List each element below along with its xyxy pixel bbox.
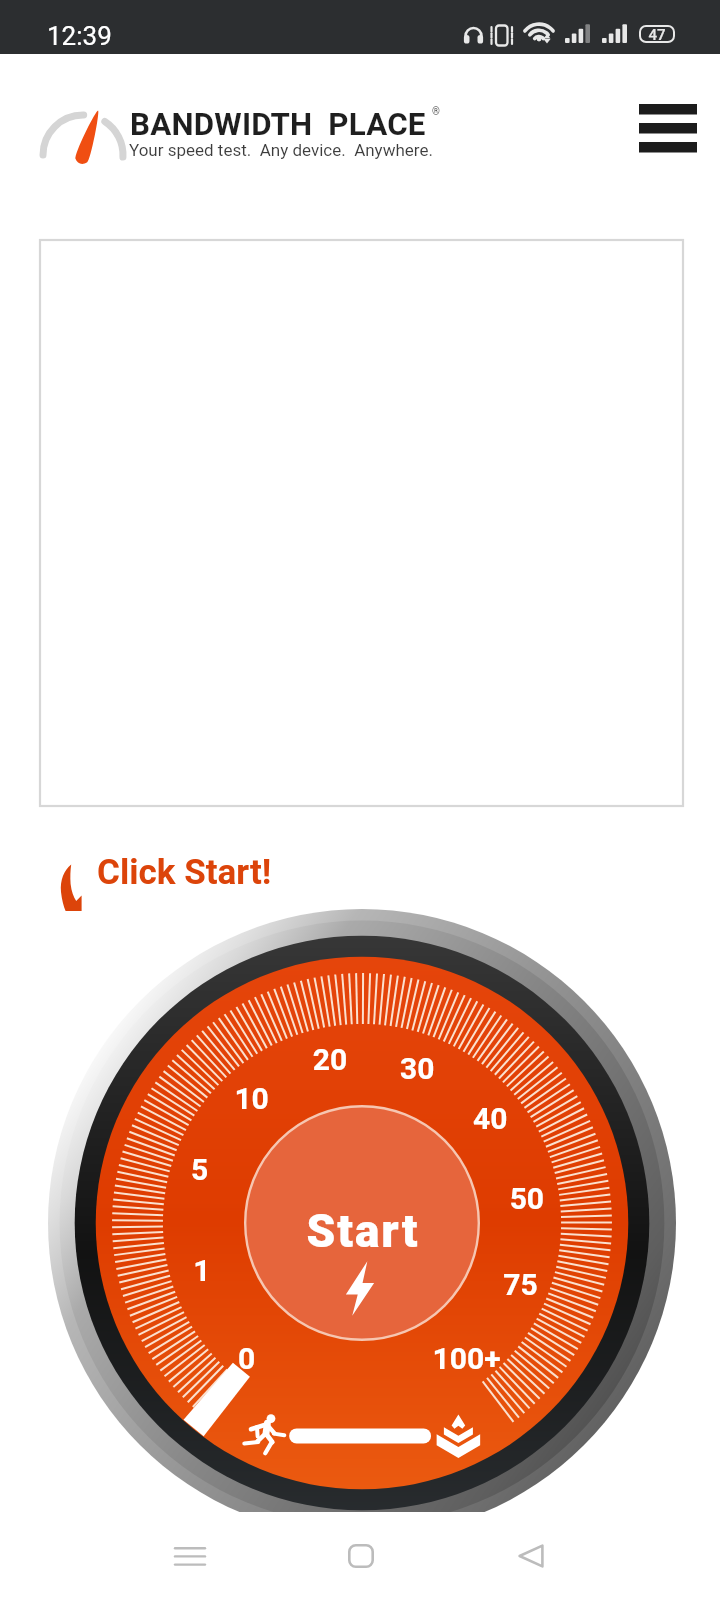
button[interactable]: Back bbox=[487, 1513, 575, 1599]
staticText: 47 bbox=[646, 26, 668, 44]
staticText: 12:39 bbox=[47, 21, 112, 51]
staticText: Your speed test. Any device. Anywhere. bbox=[129, 140, 433, 160]
staticText: BANDWIDTH PLACE bbox=[130, 106, 426, 143]
staticText: ® bbox=[432, 106, 440, 118]
staticText: Click Start! bbox=[97, 852, 272, 893]
button[interactable]: Home bbox=[317, 1513, 405, 1599]
button[interactable]: Start speed test bbox=[48, 909, 676, 1537]
button[interactable]: Open menu bbox=[624, 86, 712, 170]
button[interactable]: Recent apps bbox=[146, 1513, 234, 1599]
staticText: Start bbox=[49, 1204, 677, 1258]
